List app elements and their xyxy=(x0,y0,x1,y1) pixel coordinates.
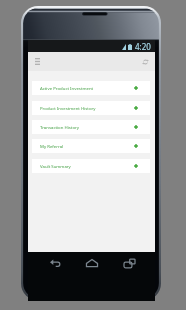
staticText: Vault Summary xyxy=(40,163,71,169)
button[interactable]: Recent apps xyxy=(120,256,138,270)
button[interactable]: Refresh xyxy=(139,53,152,70)
button[interactable]: Open navigation menu xyxy=(31,53,44,70)
button[interactable]: Vault Summary xyxy=(32,159,150,173)
staticText: Transaction History xyxy=(40,124,79,130)
staticText: Active Product Investment xyxy=(40,85,94,91)
staticText: 4:20 xyxy=(135,41,151,52)
button[interactable]: Product Investment History xyxy=(32,101,150,115)
button[interactable]: Transaction History xyxy=(32,120,150,134)
button[interactable]: Active Product Investment xyxy=(32,81,150,95)
button[interactable]: Back xyxy=(46,256,64,270)
staticText: My Referral xyxy=(40,143,64,149)
staticText: Product Investment History xyxy=(40,105,96,111)
button[interactable]: My Referral xyxy=(32,139,150,153)
button[interactable]: Home xyxy=(83,256,101,270)
